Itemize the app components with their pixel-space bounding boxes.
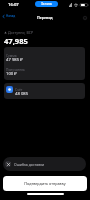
staticText: 48 085 xyxy=(15,91,29,97)
button[interactable]: Подтвердить отправку xyxy=(3,176,87,191)
staticText: Получатель xyxy=(6,67,25,71)
staticText: 100 ₽ xyxy=(6,71,17,77)
staticText: 47 985 ₽ xyxy=(6,57,23,63)
button[interactable]: Сумма xyxy=(4,47,85,80)
button[interactable]: More options xyxy=(82,15,88,21)
staticText: 16:07 xyxy=(8,2,19,8)
button[interactable]: Назад xyxy=(0,12,19,20)
button[interactable]: Recording indicator xyxy=(35,1,58,7)
button[interactable]: Счёт xyxy=(4,83,85,99)
staticText: Назад xyxy=(6,14,16,18)
staticText: Счёт xyxy=(15,87,23,91)
staticText: Сумма xyxy=(6,53,17,57)
staticText: Перевод xyxy=(37,15,53,20)
staticText: Запись xyxy=(41,2,53,6)
staticText: Ошибка доставки xyxy=(14,162,45,167)
staticText: Доступно, BCP xyxy=(8,30,34,35)
staticText: Подтвердить отправку xyxy=(24,181,66,186)
staticText: 47,985 xyxy=(4,36,28,46)
button[interactable]: Ошибка доставки xyxy=(3,157,86,171)
